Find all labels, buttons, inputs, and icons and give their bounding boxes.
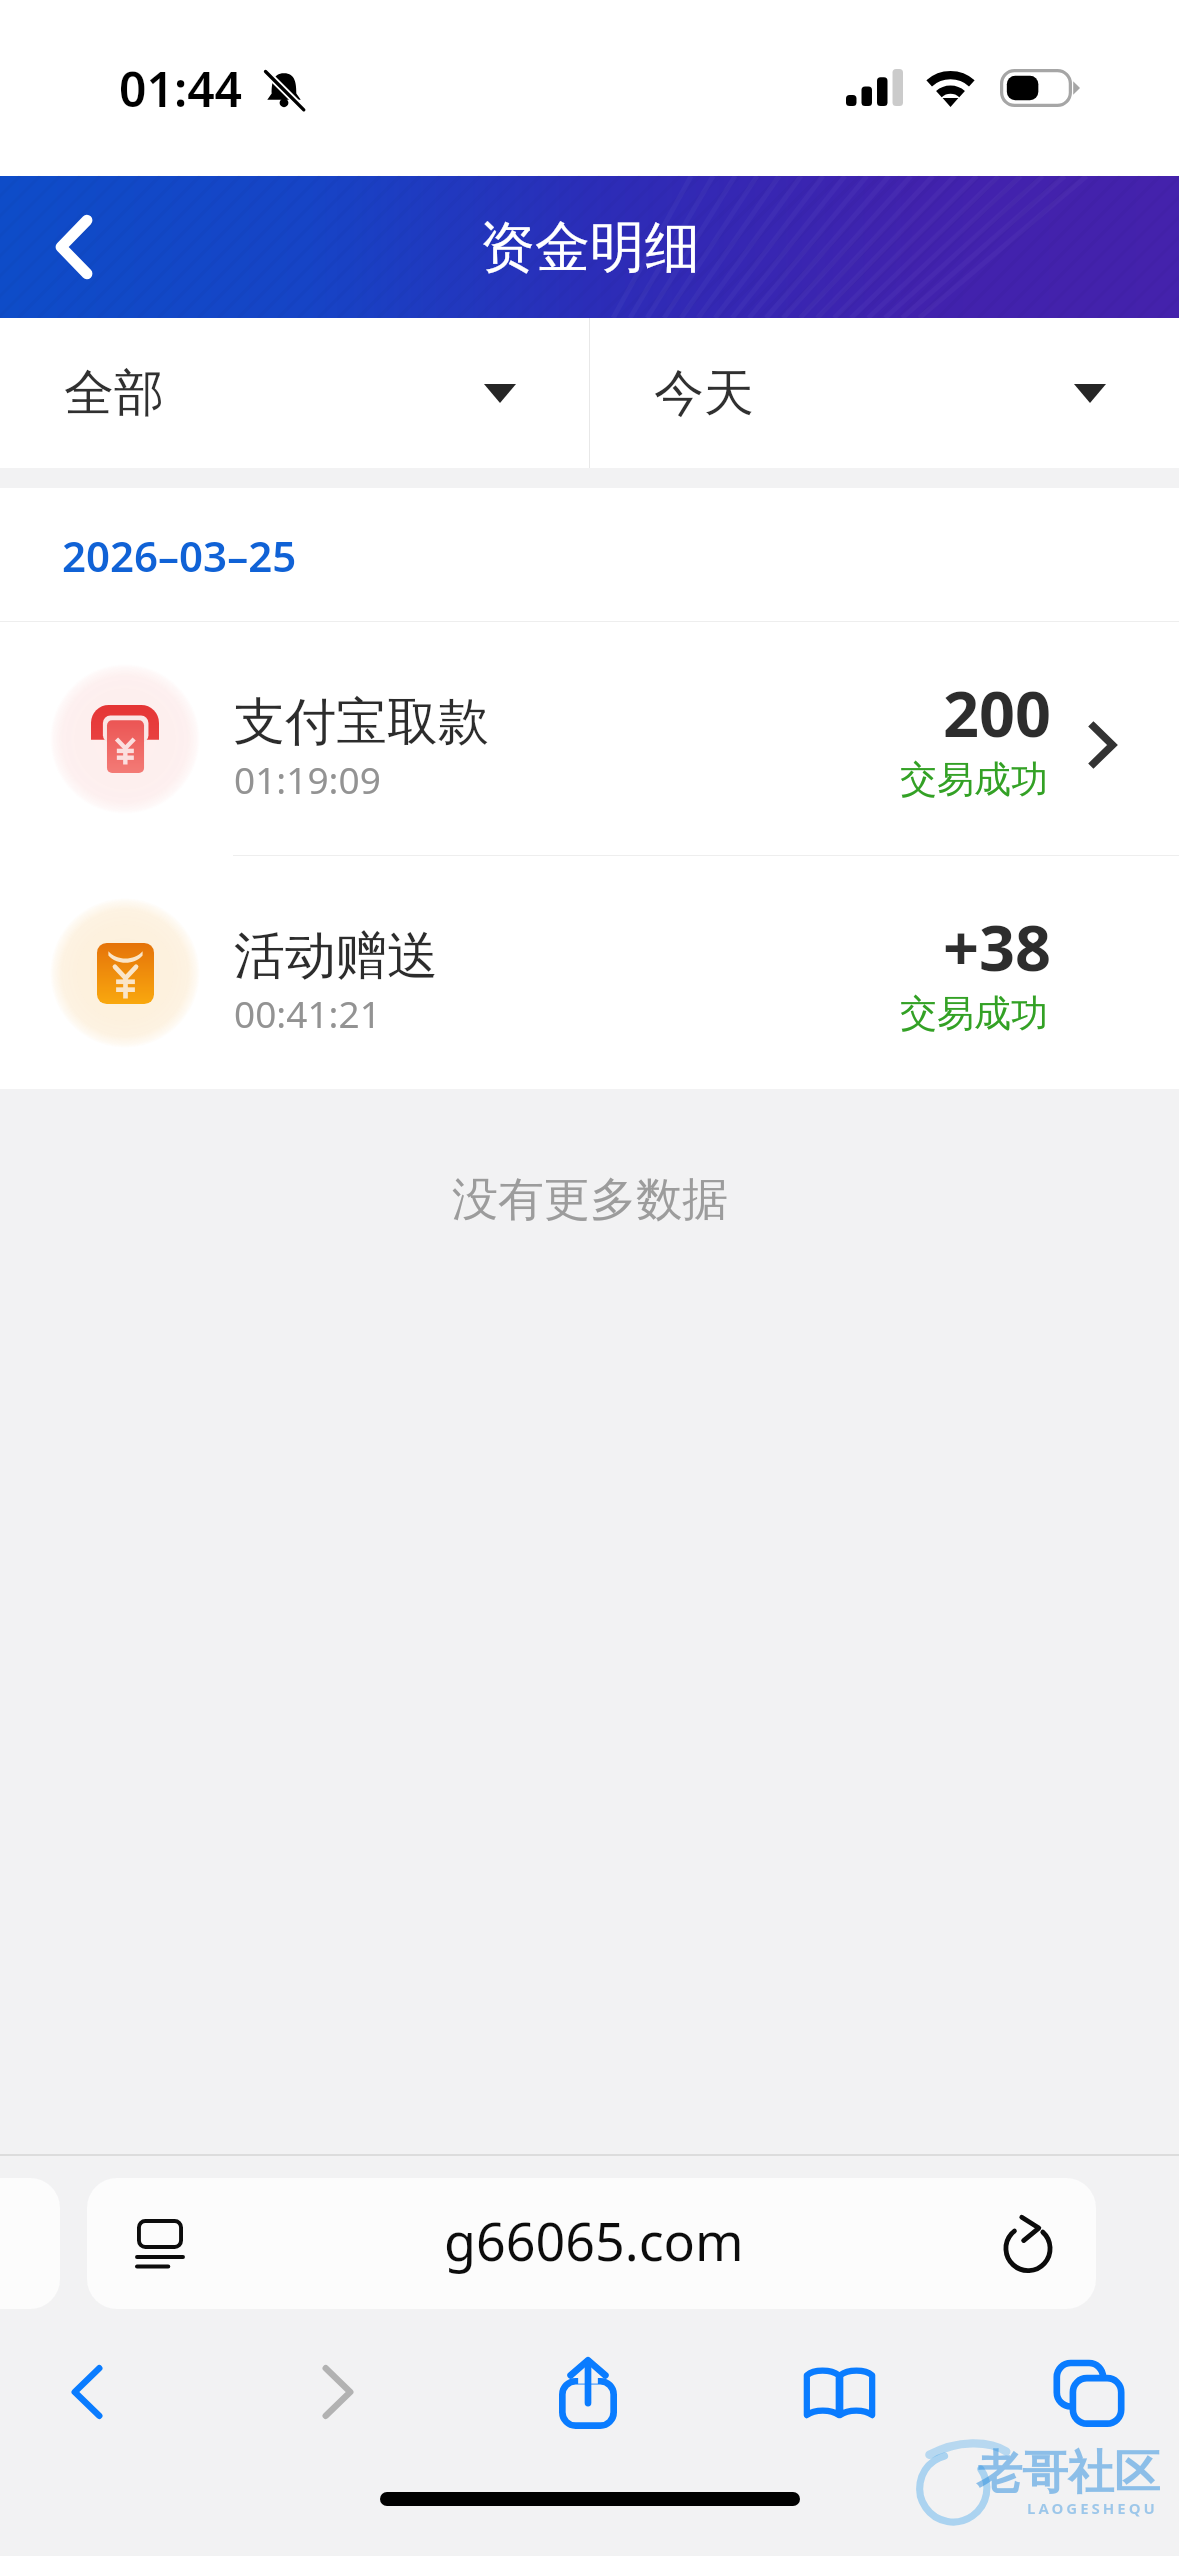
- staticText: 老哥社区: [976, 2444, 1160, 2502]
- button[interactable]: Back: [22, 195, 126, 299]
- other: Reload: [1005, 2215, 1051, 2273]
- button[interactable]: Reader view: [87, 2178, 1096, 2309]
- staticText: 今天: [654, 362, 754, 425]
- button[interactable]: 支付宝取款: [0, 622, 1179, 855]
- staticText: 交易成功: [900, 756, 1048, 803]
- button[interactable]: Back: [32, 2336, 142, 2446]
- staticText: 交易成功: [900, 990, 1048, 1037]
- staticText: 活动赠送: [234, 924, 438, 988]
- button[interactable]: Bookmarks: [784, 2336, 894, 2446]
- staticText: 00:41:21: [234, 988, 381, 1038]
- staticText: 资金明细: [480, 213, 700, 282]
- button[interactable]: Forward: [283, 2336, 393, 2446]
- staticText: 01:44: [119, 56, 243, 121]
- staticText: 200: [943, 670, 1052, 756]
- button[interactable]: Tabs: [1034, 2336, 1144, 2446]
- button[interactable]: 全部: [0, 318, 589, 468]
- staticText: +38: [943, 904, 1052, 990]
- staticText: 2026–03–25: [62, 527, 297, 584]
- staticText: 没有更多数据: [452, 1171, 728, 1229]
- staticText: g66065.com: [444, 2205, 744, 2276]
- staticText: 01:19:09: [234, 754, 381, 804]
- staticText: 全部: [64, 362, 164, 425]
- staticText: 支付宝取款: [234, 690, 489, 754]
- button[interactable]: 今天: [590, 318, 1179, 468]
- staticText: LAOGESHEQU: [1027, 2498, 1158, 2518]
- button[interactable]: Share: [533, 2336, 643, 2446]
- button[interactable]: 活动赠送: [0, 856, 1179, 1089]
- other: Reader view: [137, 2219, 183, 2269]
